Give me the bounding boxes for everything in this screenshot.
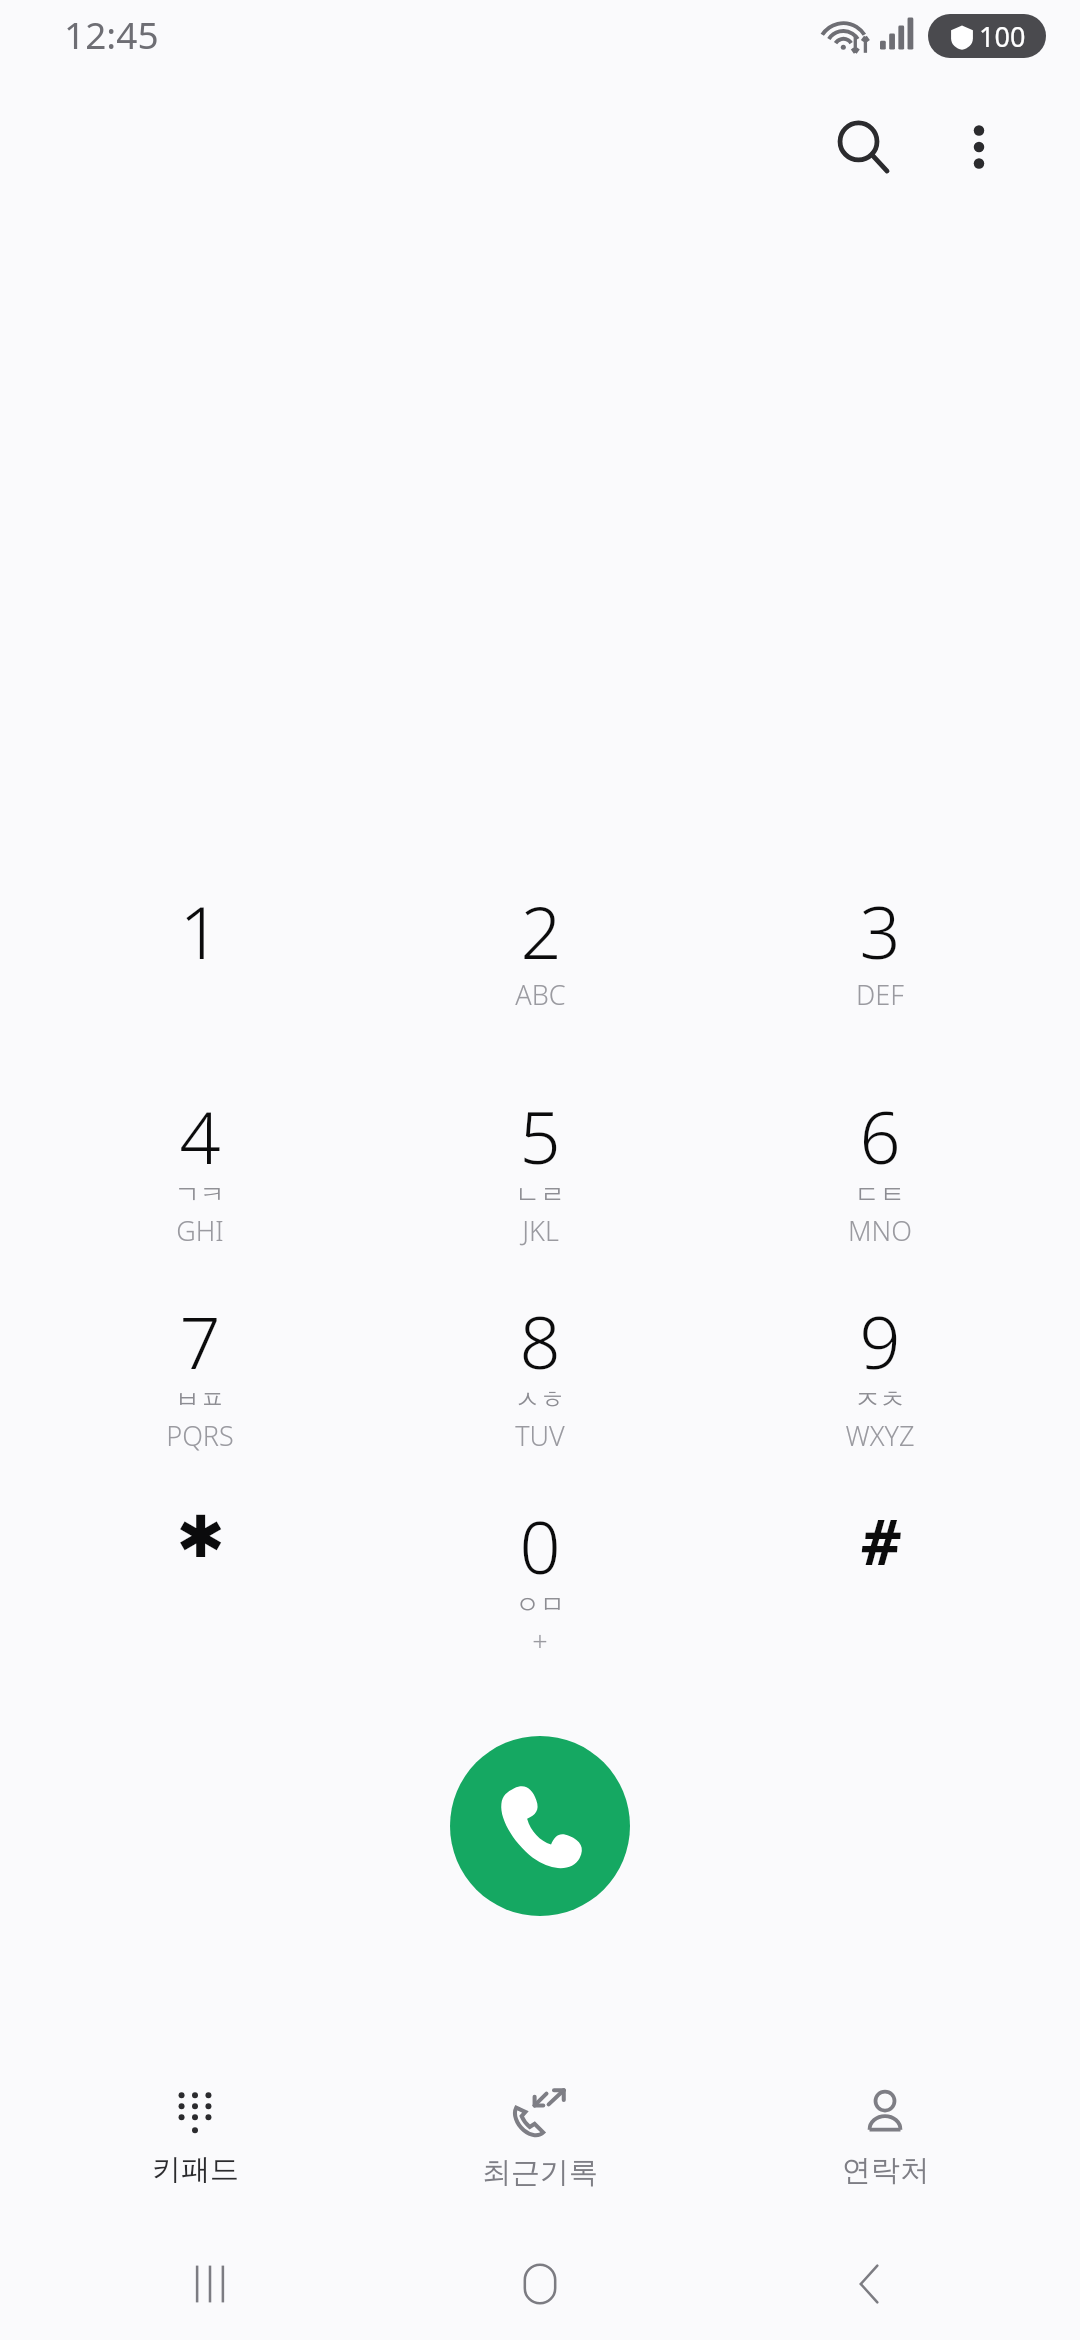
staticText: 8 xyxy=(519,1292,561,1390)
staticText: GHI xyxy=(176,1212,224,1249)
button[interactable]: Home xyxy=(420,2228,660,2340)
staticText: ㅇㅁ xyxy=(515,1589,565,1620)
button[interactable]: 연락처 xyxy=(735,2080,1035,2197)
staticText: + xyxy=(532,1622,548,1659)
button[interactable]: # xyxy=(740,1497,1020,1581)
button[interactable]: More options xyxy=(924,92,1034,202)
button[interactable]: Search xyxy=(808,92,918,202)
staticText: 1 xyxy=(179,882,221,980)
staticText: MNO xyxy=(848,1212,912,1249)
button[interactable]: Back xyxy=(750,2228,990,2340)
staticText: 키패드 xyxy=(152,2151,239,2188)
staticText: 9 xyxy=(859,1292,901,1390)
staticText: 3 xyxy=(859,882,901,980)
staticText: ✱ xyxy=(176,1503,225,1571)
staticText: 5 xyxy=(519,1087,561,1185)
button[interactable]: 1 xyxy=(60,882,340,980)
staticText: PQRS xyxy=(166,1417,234,1454)
button[interactable]: 6 xyxy=(740,1087,1020,1253)
staticText: ㄷㅌ xyxy=(855,1179,905,1210)
button[interactable]: Recent apps xyxy=(90,2228,330,2340)
staticText: 100 xyxy=(979,18,1026,55)
staticText: JKL xyxy=(522,1212,559,1249)
button[interactable]: Call xyxy=(450,1736,630,1916)
staticText: 연락처 xyxy=(842,2152,929,2189)
staticText: 4 xyxy=(179,1087,221,1185)
button[interactable]: 5 xyxy=(400,1087,680,1253)
button[interactable]: 3 xyxy=(740,882,1020,1017)
staticText: ㄴㄹ xyxy=(515,1179,565,1210)
button[interactable]: 7 xyxy=(60,1292,340,1458)
button[interactable]: 2 xyxy=(400,882,680,1017)
staticText: ㄱㅋ xyxy=(175,1179,225,1210)
staticText: 6 xyxy=(859,1087,901,1185)
button[interactable]: 9 xyxy=(740,1292,1020,1458)
staticText: # xyxy=(860,1499,901,1583)
button[interactable]: 최근기록 xyxy=(390,2078,690,2199)
staticText: ABC xyxy=(515,976,566,1013)
staticText: 12:45 xyxy=(64,9,159,59)
button[interactable]: 키패드 xyxy=(45,2081,345,2196)
staticText: ㅅㅎ xyxy=(515,1384,565,1415)
staticText: ㅈㅊ xyxy=(855,1384,905,1415)
staticText: ㅂㅍ xyxy=(175,1384,225,1415)
staticText: 최근기록 xyxy=(482,2154,598,2191)
staticText: 2 xyxy=(520,882,562,980)
button[interactable]: ✱ xyxy=(60,1497,340,1565)
staticText: TUV xyxy=(515,1417,565,1454)
button[interactable]: 8 xyxy=(400,1292,680,1458)
staticText: 7 xyxy=(179,1292,221,1390)
button[interactable]: 0 xyxy=(400,1497,680,1663)
staticText: WXYZ xyxy=(845,1417,915,1454)
staticText: DEF xyxy=(856,976,904,1013)
button[interactable]: 4 xyxy=(60,1087,340,1253)
staticText: 0 xyxy=(519,1497,561,1595)
